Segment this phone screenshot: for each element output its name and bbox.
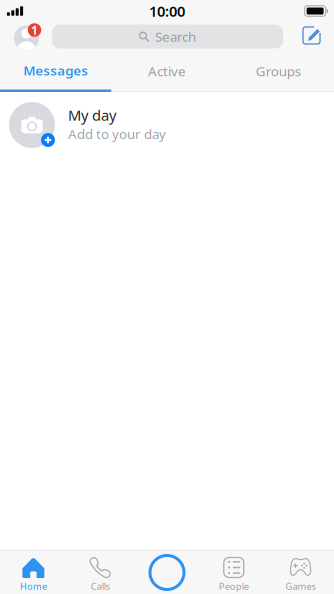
staticText: Calls <box>91 580 110 592</box>
button[interactable]: Games <box>267 551 334 594</box>
staticText: 1 <box>31 22 38 38</box>
staticText: Games <box>286 580 316 592</box>
staticText: My day <box>68 105 116 125</box>
staticText: Groups <box>256 62 301 80</box>
button[interactable]: Home <box>0 551 67 594</box>
staticText: Home <box>20 580 47 592</box>
staticText: Add to your day <box>68 125 166 143</box>
button[interactable]: Profile <box>10 23 52 49</box>
button[interactable]: Active <box>111 51 223 92</box>
button[interactable]: Messages <box>0 51 111 92</box>
staticText: Active <box>148 62 186 80</box>
button[interactable]: People <box>200 551 267 594</box>
staticText: 10:00 <box>149 1 185 21</box>
staticText: Search <box>155 28 196 45</box>
button[interactable]: Calls <box>67 551 134 594</box>
staticText: Messages <box>23 61 88 79</box>
button[interactable]: Camera <box>134 551 200 594</box>
button[interactable]: My day <box>0 92 334 158</box>
button[interactable]: New message <box>283 23 324 49</box>
button[interactable]: Search <box>52 24 283 48</box>
staticText: People <box>219 580 249 592</box>
button[interactable]: Groups <box>223 51 334 92</box>
